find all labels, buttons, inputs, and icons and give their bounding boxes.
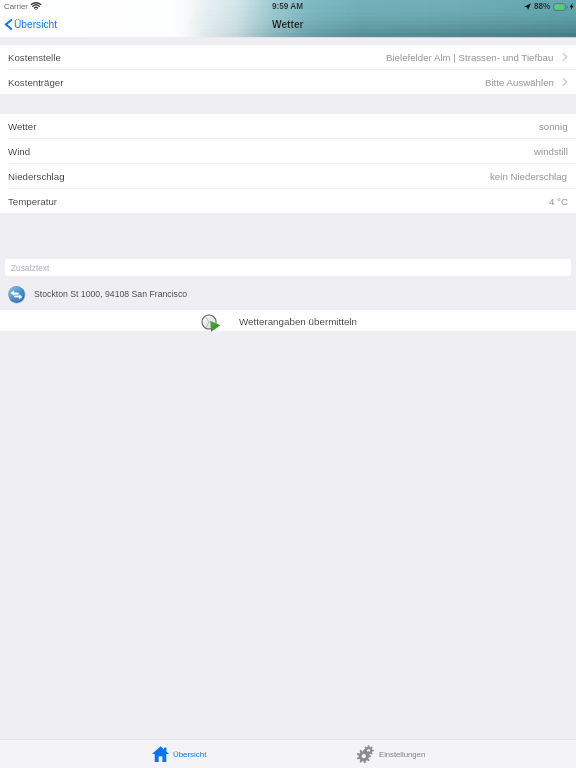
staticText: 88%: [534, 2, 551, 11]
staticText: Übersicht: [173, 750, 207, 759]
staticText: Temperatur: [8, 196, 57, 207]
button[interactable]: Einstellungen: [357, 740, 426, 768]
staticText: Carrier: [4, 2, 28, 11]
staticText: Wetter: [8, 121, 37, 132]
staticText: kein Niederschlag: [490, 171, 568, 182]
button[interactable]: Zusatztext: [5, 259, 571, 276]
staticText: windstill: [534, 146, 568, 157]
button[interactable]: Submit weather data: [201, 310, 357, 331]
button[interactable]: Wind: [0, 139, 576, 163]
button[interactable]: Kostenträger: [0, 70, 576, 94]
button[interactable]: Location: [8, 276, 576, 310]
staticText: Bielefelder Alm | Strassen- und Tiefbau: [386, 52, 554, 63]
staticText: Wetter: [272, 19, 304, 30]
button[interactable]: Niederschlag: [0, 164, 576, 188]
staticText: Übersicht: [14, 19, 58, 30]
other: Location: [8, 285, 25, 304]
button[interactable]: Übersicht: [5, 14, 58, 35]
staticText: Einstellungen: [379, 750, 426, 759]
staticText: Bitte Auswählen: [485, 77, 554, 88]
staticText: 4 °C: [549, 196, 568, 207]
button[interactable]: Übersicht: [152, 740, 207, 768]
staticText: Zusatztext: [11, 263, 50, 272]
staticText: sonnig: [539, 121, 568, 132]
staticText: Wind: [8, 146, 31, 157]
button[interactable]: Wetter: [0, 114, 576, 138]
staticText: 9:59 AM: [272, 2, 304, 11]
staticText: Stockton St 1000, 94108 San Francisco: [34, 289, 188, 299]
button[interactable]: Kostenstelle: [0, 45, 576, 69]
other: Submit weather data: [201, 313, 222, 331]
staticText: Kostenstelle: [8, 52, 61, 63]
staticText: Niederschlag: [8, 171, 65, 182]
staticText: Kostenträger: [8, 77, 64, 88]
staticText: Wetterangaben übermitteln: [239, 316, 357, 327]
button[interactable]: Temperatur: [0, 189, 576, 213]
